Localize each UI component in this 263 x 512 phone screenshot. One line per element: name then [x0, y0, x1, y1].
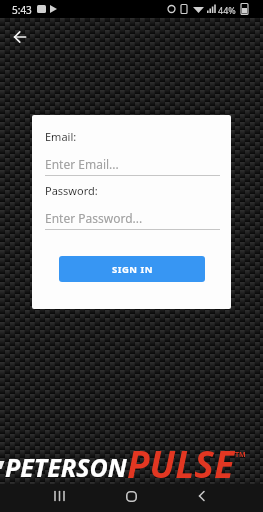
staticText: SIGN IN [112, 263, 153, 276]
staticText: Enter Email... [45, 156, 119, 172]
button[interactable] [45, 152, 220, 176]
button[interactable] [119, 484, 143, 508]
button[interactable] [45, 206, 220, 230]
staticText: Email: [45, 129, 77, 144]
staticText: TM [235, 450, 246, 460]
staticText: Enter Password... [45, 210, 143, 226]
staticText: PULSE [127, 438, 235, 480]
staticText: 44% [218, 4, 236, 16]
button[interactable] [8, 25, 32, 49]
staticText: 5:43 [12, 3, 32, 17]
staticText: PETERSON [5, 450, 127, 484]
button[interactable] [190, 484, 214, 508]
button[interactable]: SIGN IN [59, 256, 205, 282]
staticText: Password: [45, 183, 98, 198]
button[interactable] [48, 484, 72, 508]
